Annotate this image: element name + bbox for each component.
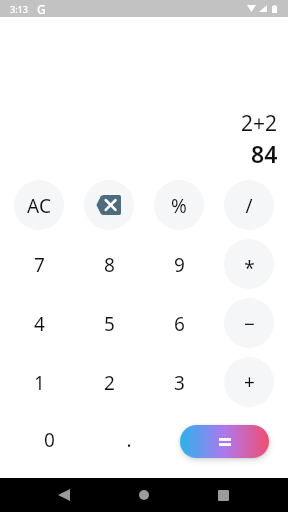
staticText: 6 <box>174 311 185 337</box>
button[interactable]: 6 <box>154 298 204 348</box>
staticText: 2+2 <box>241 109 278 138</box>
button[interactable]: 8 <box>84 239 134 289</box>
button[interactable]: 4 <box>14 298 64 348</box>
staticText: 2 <box>104 370 115 396</box>
staticText: G <box>37 1 46 17</box>
button[interactable]: AC <box>14 180 64 230</box>
button[interactable]: 9 <box>154 239 204 289</box>
staticText: 3 <box>174 370 185 396</box>
button[interactable]: 0 <box>21 411 77 467</box>
button[interactable]: 2 <box>84 357 134 407</box>
staticText: + <box>244 369 255 395</box>
button[interactable]: Recent apps <box>206 478 240 512</box>
button[interactable]: Back <box>47 478 81 512</box>
button[interactable]: + <box>224 357 274 407</box>
button[interactable]: . <box>101 411 157 467</box>
button[interactable]: 3 <box>154 357 204 407</box>
other: Backspace <box>96 195 121 215</box>
staticText: 84 <box>251 138 278 169</box>
staticText: 9 <box>174 252 185 278</box>
button[interactable]: / <box>224 180 274 230</box>
button[interactable]: 5 <box>84 298 134 348</box>
button[interactable]: 7 <box>14 239 64 289</box>
staticText: % <box>171 193 187 219</box>
button[interactable]: Backspace <box>84 180 134 230</box>
staticText: 3:13 <box>10 3 28 15</box>
button[interactable]: − <box>224 298 274 348</box>
button[interactable]: 1 <box>14 357 64 407</box>
staticText: 0 <box>44 427 55 453</box>
staticText: − <box>244 311 255 337</box>
staticText: 4 <box>34 311 45 337</box>
button[interactable]: Equals <box>180 425 269 458</box>
staticText: * <box>244 255 255 281</box>
staticText: 8 <box>104 252 115 278</box>
button[interactable]: % <box>154 180 204 230</box>
staticText: . <box>126 427 132 453</box>
staticText: 1 <box>34 370 45 396</box>
button[interactable]: Home <box>127 478 161 512</box>
staticText: 5 <box>104 311 115 337</box>
staticText: / <box>245 193 253 219</box>
staticText: AC <box>27 193 51 219</box>
staticText: 7 <box>34 252 45 278</box>
button[interactable]: * <box>224 239 274 289</box>
